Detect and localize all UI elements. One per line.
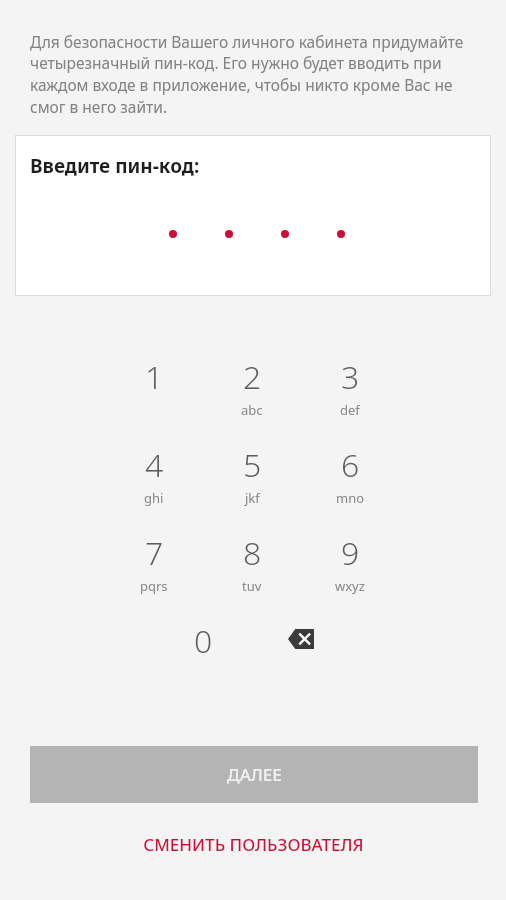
staticText: def (340, 401, 360, 419)
button[interactable]: 1 (105, 349, 203, 437)
button[interactable]: 0 (154, 613, 252, 701)
staticText: Введите пин-код: (30, 153, 200, 179)
button[interactable]: 3 (301, 349, 399, 437)
staticText: СМЕНИТЬ ПОЛЬЗОВАТЕЛЯ (143, 833, 364, 856)
button[interactable]: 6 (301, 437, 399, 525)
staticText: Для безопасности Вашего личного кабинета… (30, 31, 484, 118)
staticText: 5 (243, 443, 262, 487)
button[interactable]: 9 (301, 525, 399, 613)
staticText: jkf (245, 489, 260, 507)
staticText: ДАЛЕЕ (227, 763, 282, 786)
staticText: 1 (145, 355, 164, 399)
staticText: 4 (145, 443, 164, 487)
staticText: 9 (341, 531, 360, 575)
staticText: mno (336, 489, 365, 507)
button[interactable]: 4 (105, 437, 203, 525)
staticText: 3 (341, 355, 360, 399)
staticText: 2 (243, 355, 262, 399)
button[interactable]: 5 (203, 437, 301, 525)
staticText: ghi (144, 489, 164, 507)
staticText: 7 (145, 531, 164, 575)
button[interactable]: СМЕНИТЬ ПОЛЬЗОВАТЕЛЯ (0, 822, 506, 866)
staticText: wxyz (335, 577, 365, 595)
staticText: pqrs (140, 577, 168, 595)
button[interactable]: 7 (105, 525, 203, 613)
staticText: 0 (194, 619, 213, 663)
staticText: tuv (242, 577, 262, 595)
staticText: 6 (341, 443, 360, 487)
button[interactable]: 8 (203, 525, 301, 613)
button[interactable]: 2 (203, 349, 301, 437)
staticText: 8 (243, 531, 262, 575)
button[interactable]: Backspace (252, 613, 350, 701)
button[interactable]: Введите пин-код: (15, 135, 491, 296)
button[interactable]: ДАЛЕЕ (30, 746, 478, 803)
staticText: abc (241, 401, 263, 419)
